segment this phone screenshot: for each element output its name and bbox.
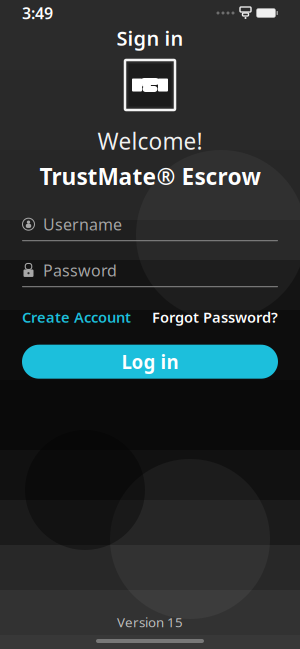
button[interactable]: Log in bbox=[22, 345, 278, 379]
staticText: Welcome! bbox=[97, 126, 202, 156]
staticText: Username bbox=[43, 214, 122, 235]
staticText: 3:49 bbox=[22, 2, 53, 24]
staticText: Create Account bbox=[22, 307, 131, 327]
staticText: Forgot Password? bbox=[152, 307, 278, 327]
staticText: Password bbox=[43, 260, 117, 281]
button[interactable]: Create Account bbox=[22, 307, 131, 327]
staticText: Log in bbox=[121, 349, 178, 374]
staticText: Sign in bbox=[116, 25, 183, 51]
button[interactable]: Forgot Password? bbox=[152, 307, 278, 327]
staticText: Version 15 bbox=[117, 613, 183, 631]
staticText: TrustMate® Escrow bbox=[39, 161, 260, 191]
